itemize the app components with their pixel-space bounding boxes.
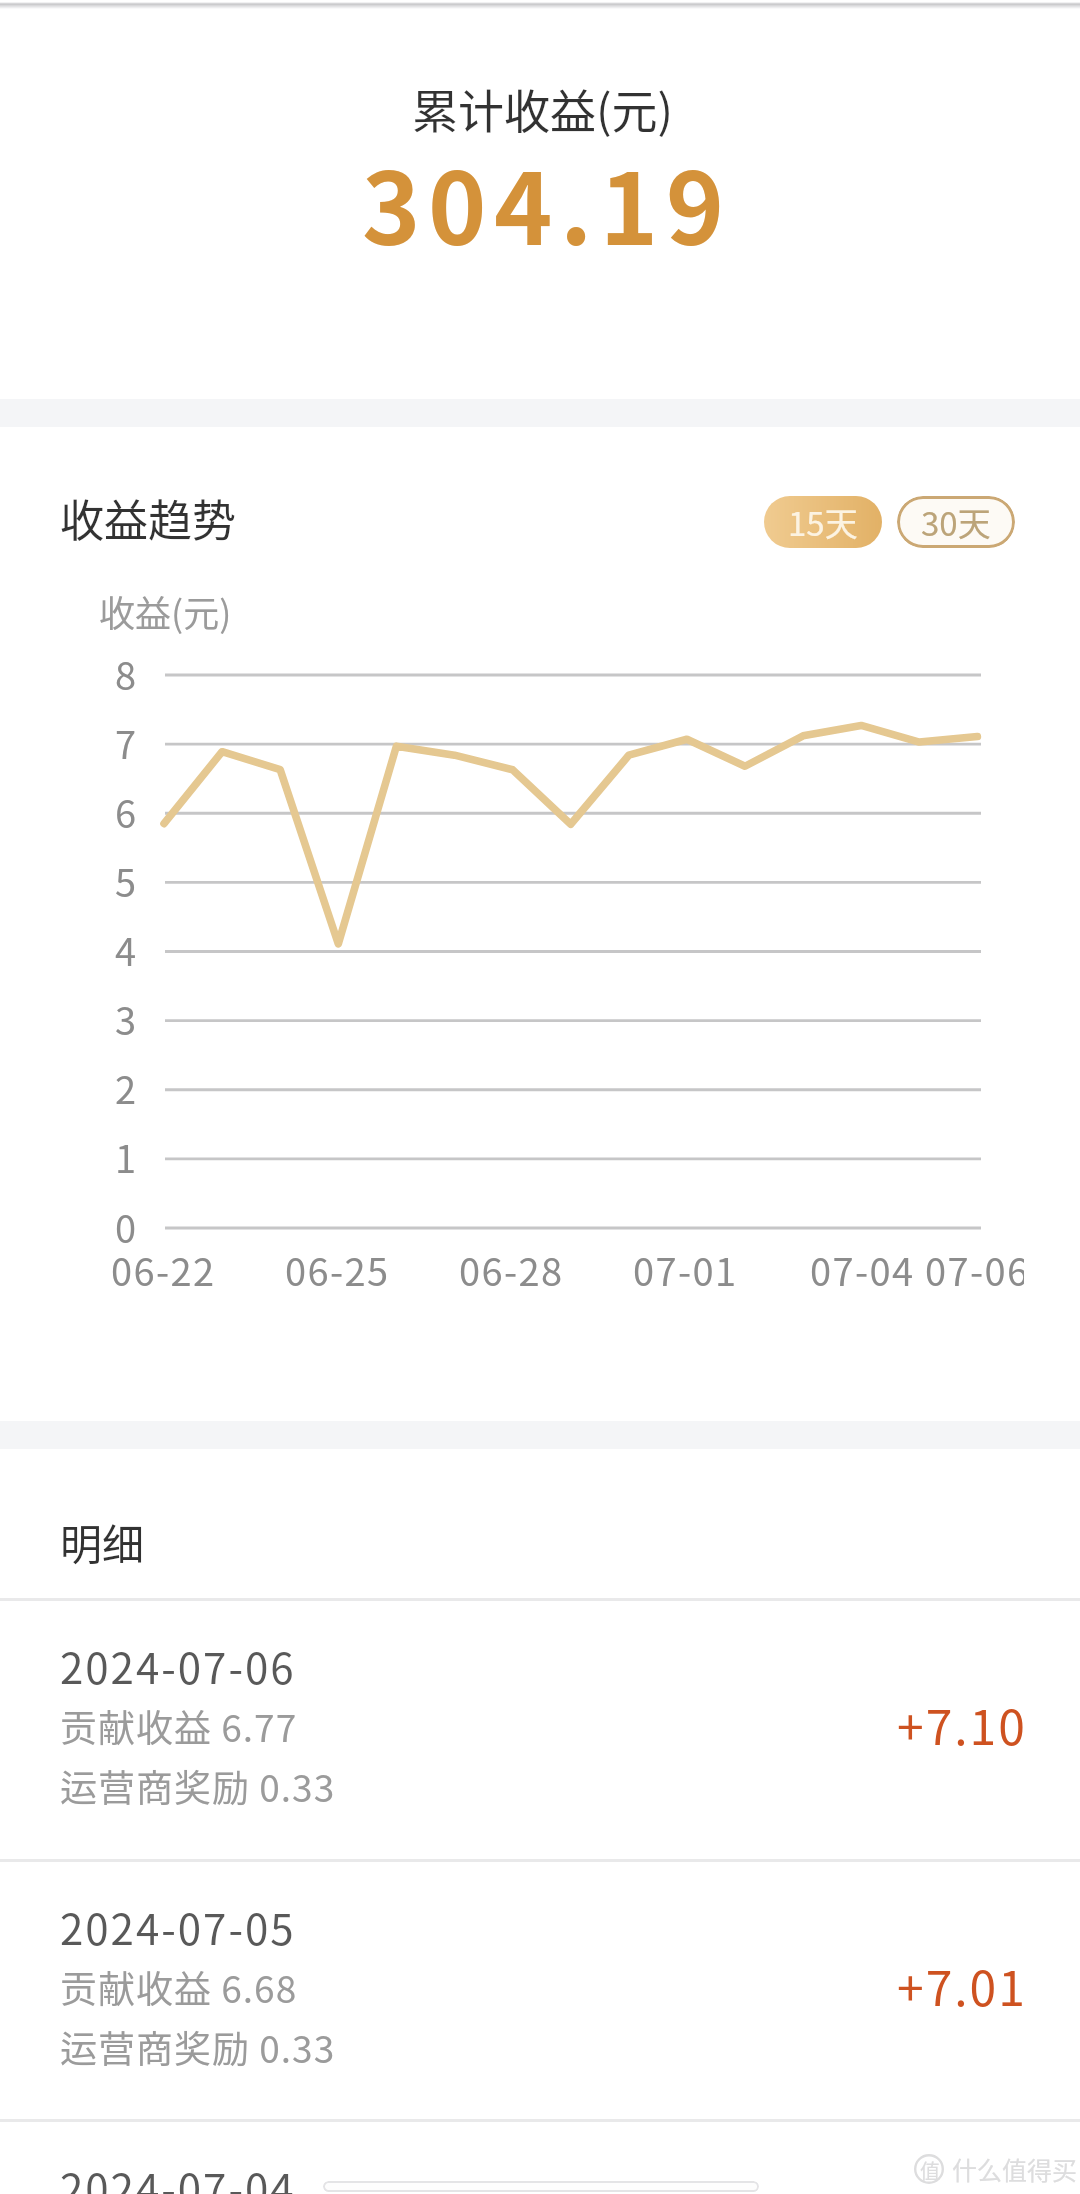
staticText: 304.19 — [362, 130, 732, 273]
staticText: 30天 — [921, 498, 991, 546]
button[interactable]: 2024-07-06 — [0, 1599, 1080, 1859]
staticText: 运营商奖励 0.33 — [60, 2020, 336, 2074]
staticText: 07-01 — [633, 1242, 738, 1297]
staticText: 4 — [115, 922, 137, 977]
staticText: 7 — [115, 715, 137, 770]
staticText: 06-25 — [285, 1242, 390, 1297]
staticText: +7.01 — [897, 1950, 1027, 2020]
staticText: 3 — [115, 991, 137, 1046]
staticText: 什么值得买 — [952, 2151, 1078, 2187]
button[interactable]: 2024-07-04 — [0, 2120, 1080, 2194]
button[interactable]: 15天 — [764, 496, 882, 548]
staticText: +7.10 — [897, 1689, 1027, 1759]
staticText: 2024-07-06 — [60, 1635, 296, 1696]
staticText: 贡献收益 6.68 — [60, 1960, 298, 2014]
staticText: 收益(元) — [99, 585, 232, 637]
staticText: 5 — [115, 853, 137, 908]
staticText: 1 — [115, 1129, 137, 1184]
staticText: 07-06 — [925, 1242, 1024, 1297]
staticText: 贡献收益 6.77 — [60, 1699, 298, 1753]
staticText: 07-04 — [810, 1242, 915, 1297]
staticText: 累计收益(元) — [412, 75, 674, 142]
button[interactable]: 30天 — [897, 496, 1015, 548]
staticText: 6 — [115, 784, 137, 839]
staticText: 06-28 — [459, 1242, 564, 1297]
staticText: 0 — [115, 1199, 137, 1254]
staticText: 运营商奖励 0.33 — [60, 1759, 336, 1813]
button[interactable]: 2024-07-05 — [0, 1860, 1080, 2120]
staticText: 收益趋势 — [60, 486, 236, 550]
staticText: 值 — [920, 2156, 940, 2185]
staticText: 2024-07-05 — [60, 1896, 296, 1957]
staticText: 2024-07-04 — [60, 2156, 296, 2194]
staticText: 明细 — [60, 1511, 145, 1572]
staticText: 2 — [115, 1060, 137, 1115]
staticText: 8 — [115, 646, 137, 701]
staticText: 06-22 — [111, 1242, 216, 1297]
staticText: 15天 — [788, 498, 858, 546]
